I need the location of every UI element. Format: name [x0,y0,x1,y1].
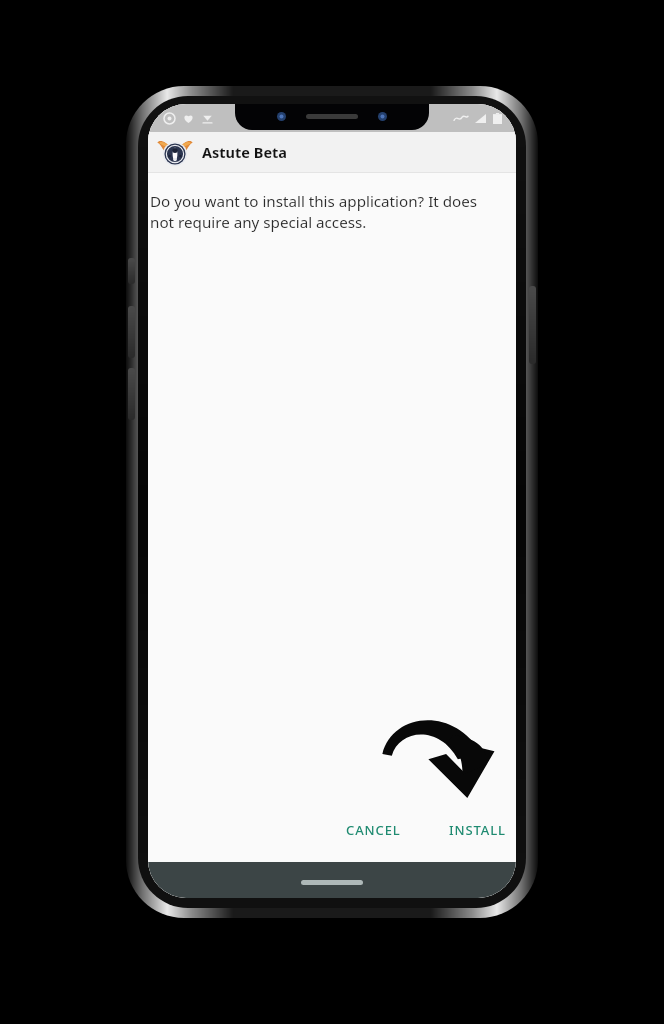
button[interactable]: Astute Beta [148,132,516,172]
button[interactable]: Home [301,880,363,885]
staticText: Astute Beta [202,142,288,162]
staticText: Do you want to install this application?… [150,191,502,233]
button[interactable]: CANCEL [336,813,411,847]
staticText: CANCEL [346,821,401,839]
button[interactable]: INSTALL [439,813,516,847]
staticText: INSTALL [449,821,506,839]
